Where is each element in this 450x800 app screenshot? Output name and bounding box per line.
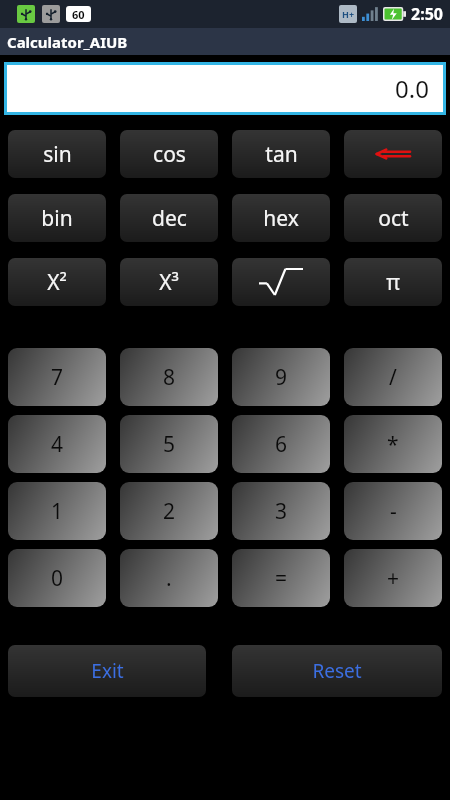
button[interactable]: X³ — [120, 258, 218, 306]
button[interactable]: 1 — [8, 482, 106, 540]
button[interactable]: sin — [8, 130, 106, 178]
staticText: hex — [263, 204, 299, 233]
staticText: X² — [47, 268, 67, 297]
button[interactable]: 8 — [120, 348, 218, 406]
staticText: = — [275, 564, 288, 593]
staticText: 5 — [163, 430, 176, 459]
staticText: cos — [153, 140, 186, 169]
button[interactable]: 7 — [8, 348, 106, 406]
staticText: Exit — [91, 658, 124, 684]
button[interactable]: * — [344, 415, 442, 473]
button[interactable]: Exit — [8, 645, 206, 697]
staticText: 1 — [51, 497, 64, 526]
button[interactable]: cos — [120, 130, 218, 178]
button[interactable]: 5 — [120, 415, 218, 473]
staticText: / — [389, 363, 397, 392]
staticText: . — [166, 564, 172, 593]
button[interactable]: oct — [344, 194, 442, 242]
staticText: 7 — [51, 363, 64, 392]
staticText: π — [386, 268, 400, 297]
button[interactable]: Square root — [232, 258, 330, 306]
button[interactable]: 6 — [232, 415, 330, 473]
staticText: X³ — [159, 268, 179, 297]
button[interactable]: Backspace — [344, 130, 442, 178]
button[interactable]: . — [120, 549, 218, 607]
button[interactable]: / — [344, 348, 442, 406]
button[interactable]: Reset — [232, 645, 442, 697]
staticText: 4 — [51, 430, 64, 459]
staticText: 3 — [275, 497, 288, 526]
button[interactable]: 2 — [120, 482, 218, 540]
button[interactable]: 3 — [232, 482, 330, 540]
staticText: oct — [378, 204, 409, 233]
button[interactable]: X² — [8, 258, 106, 306]
button[interactable]: bin — [8, 194, 106, 242]
staticText: 0.0 — [395, 72, 429, 105]
button[interactable]: 9 — [232, 348, 330, 406]
button[interactable]: dec — [120, 194, 218, 242]
staticText: Calculator_AIUB — [7, 32, 128, 52]
button[interactable]: π — [344, 258, 442, 306]
button[interactable]: hex — [232, 194, 330, 242]
staticText: 0 — [51, 564, 64, 593]
staticText: - — [390, 497, 397, 526]
staticText: 9 — [275, 363, 288, 392]
staticText: 60 — [72, 7, 85, 22]
staticText: * — [387, 430, 399, 459]
staticText: Reset — [312, 658, 362, 684]
staticText: H+ — [342, 8, 355, 20]
button[interactable]: 4 — [8, 415, 106, 473]
staticText: 8 — [163, 363, 176, 392]
button[interactable]: = — [232, 549, 330, 607]
staticText: 2:50 — [411, 3, 443, 25]
staticText: + — [387, 564, 400, 593]
staticText: bin — [41, 204, 73, 233]
button[interactable]: + — [344, 549, 442, 607]
staticText: sin — [43, 140, 72, 169]
staticText: dec — [152, 204, 187, 233]
button[interactable]: 0 — [8, 549, 106, 607]
button[interactable]: - — [344, 482, 442, 540]
staticText: tan — [265, 140, 298, 169]
button[interactable]: tan — [232, 130, 330, 178]
staticText: 2 — [163, 497, 176, 526]
staticText: 6 — [275, 430, 288, 459]
